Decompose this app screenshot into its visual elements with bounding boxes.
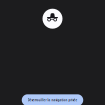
- button[interactable]: Déverrouiller la navigation privée: [22, 94, 83, 105]
- staticText: Déverrouiller la navigation privée: [27, 98, 77, 102]
